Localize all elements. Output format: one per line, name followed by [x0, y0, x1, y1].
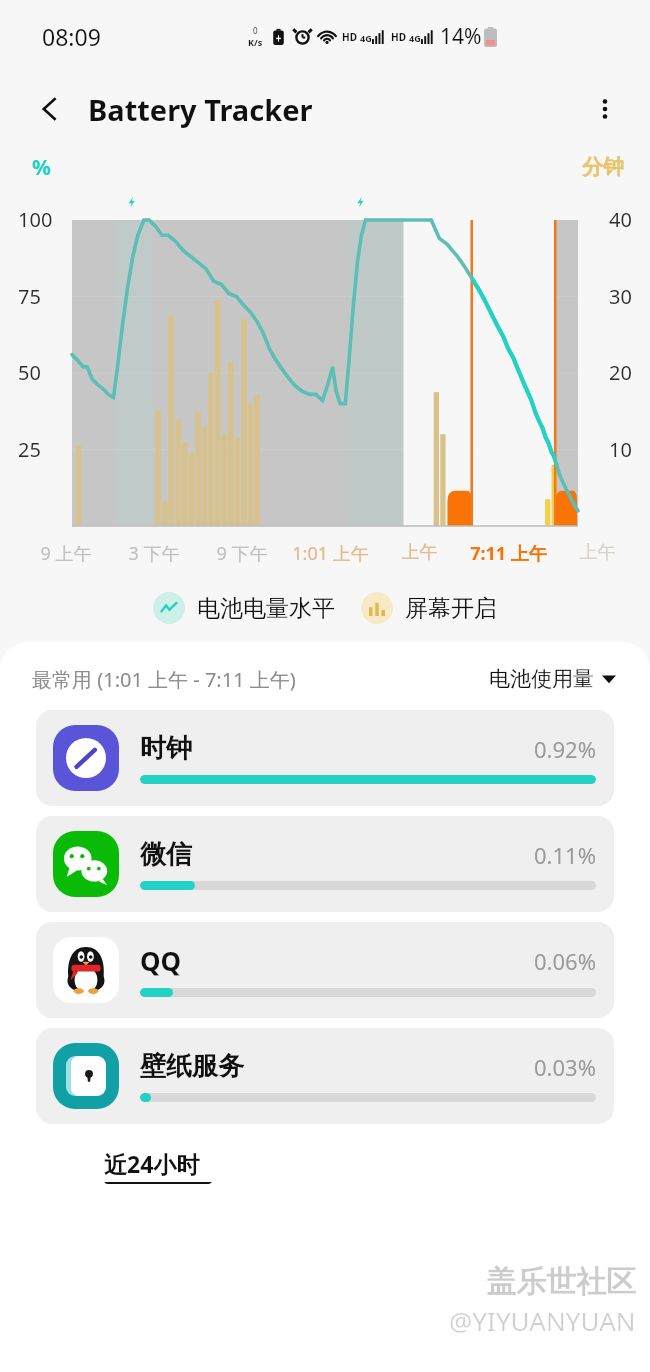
staticText: 电池使用量	[489, 666, 594, 692]
staticText: 盖乐世社区	[486, 1263, 636, 1301]
staticText: 0.03%	[534, 1052, 596, 1082]
button[interactable]: Back	[22, 81, 78, 137]
staticText: 微信	[140, 838, 192, 871]
staticText: 最常用 (1:01 上午 - 7:11 上午)	[32, 666, 296, 693]
staticText: 50	[18, 359, 41, 386]
staticText: 0	[253, 25, 258, 36]
staticText: K/s	[248, 36, 263, 48]
staticText: 9 上午	[22, 541, 110, 566]
staticText: Battery Tracker	[88, 90, 313, 129]
staticText: 9 下午	[198, 541, 286, 566]
button[interactable]: 电池使用量	[487, 662, 618, 696]
staticText: HD	[391, 30, 406, 44]
staticText: 75	[18, 283, 41, 310]
staticText: %	[32, 153, 51, 182]
staticText: 25	[18, 436, 41, 463]
staticText: 时钟	[140, 732, 192, 765]
staticText: 20	[609, 359, 632, 386]
staticText: 壁纸服务	[140, 1050, 244, 1083]
staticText: 上午	[553, 541, 642, 564]
staticText: 近24小时	[104, 1148, 200, 1179]
staticText: 14%	[440, 22, 482, 51]
staticText: 40	[609, 206, 632, 233]
staticText: @YIYUANYUAN	[449, 1303, 636, 1338]
staticText: 4G	[409, 32, 421, 44]
staticText: 0.06%	[534, 946, 596, 976]
staticText: 100	[18, 206, 53, 233]
button[interactable]: More options	[578, 82, 632, 136]
staticText: 08:09	[42, 21, 101, 52]
staticText: 1:01 上午	[286, 541, 375, 566]
staticText: 0.11%	[534, 840, 596, 870]
staticText: 屏幕开启	[405, 594, 497, 623]
button[interactable]: 微信	[36, 816, 614, 912]
staticText: 10	[609, 436, 632, 463]
staticText: 上午	[375, 541, 464, 564]
button[interactable]: 近24小时	[104, 1148, 212, 1184]
button[interactable]: 时钟	[36, 710, 614, 806]
staticText: 电池电量水平	[197, 594, 335, 623]
staticText: 3 下午	[110, 541, 198, 566]
staticText: 分钟	[582, 154, 624, 180]
staticText: 30	[609, 283, 632, 310]
staticText: 0.92%	[534, 734, 596, 764]
button[interactable]: QQ	[36, 922, 614, 1018]
button[interactable]: 壁纸服务	[36, 1028, 614, 1124]
staticText: QQ	[140, 943, 182, 978]
staticText: 4G	[360, 32, 372, 44]
staticText: 7:11 上午	[464, 541, 553, 566]
staticText: HD	[342, 30, 357, 44]
